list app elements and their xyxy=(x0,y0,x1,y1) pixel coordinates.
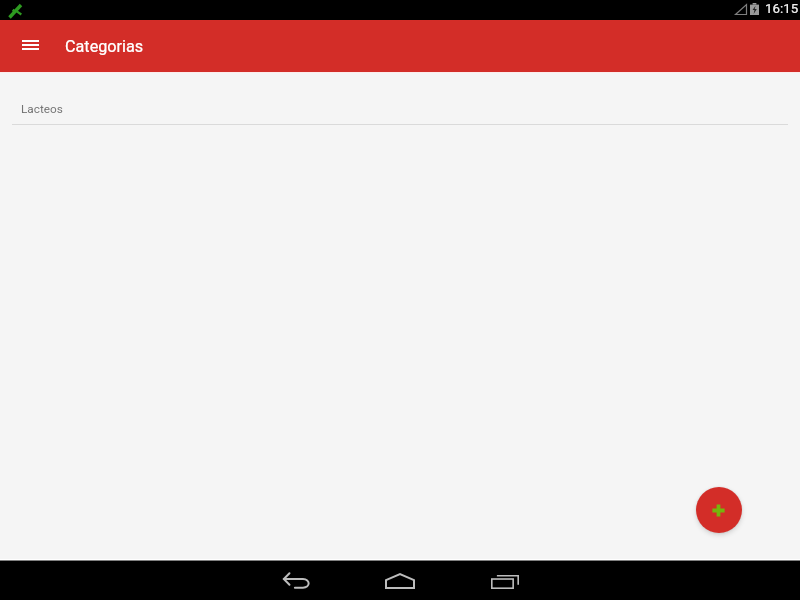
button[interactable]: Recent apps xyxy=(479,562,531,600)
staticText: Categorias xyxy=(65,37,144,56)
button[interactable]: Open navigation drawer xyxy=(8,24,52,68)
staticText: Lacteos xyxy=(21,102,63,116)
button[interactable]: Lacteos xyxy=(0,73,800,125)
button[interactable]: Home xyxy=(374,561,426,600)
button[interactable]: Back xyxy=(270,560,322,600)
button[interactable]: Add category xyxy=(696,487,742,533)
staticText: 16:15 xyxy=(765,1,799,17)
